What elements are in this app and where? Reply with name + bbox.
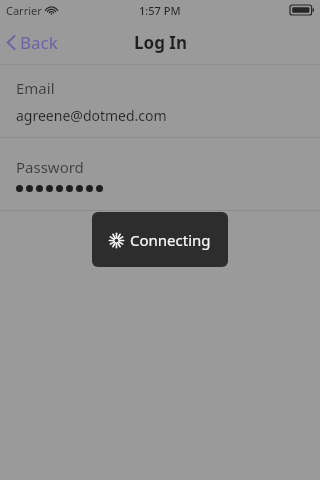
staticText: Log In	[134, 31, 187, 54]
button[interactable]: Email	[0, 65, 320, 137]
staticText: Password	[16, 157, 84, 177]
staticText: Back	[20, 31, 58, 54]
button[interactable]: Back	[6, 31, 58, 54]
staticText: 1:57 PM	[139, 3, 181, 18]
staticText: Carrier	[6, 3, 42, 18]
staticText: agreene@dotmed.com	[16, 106, 167, 125]
staticText: Log In	[135, 223, 186, 246]
other: Loading	[109, 233, 124, 248]
button[interactable]: Loading	[92, 212, 228, 267]
button[interactable]: Password	[0, 138, 320, 210]
staticText: Connecting	[130, 230, 211, 250]
button[interactable]: Log In	[0, 211, 320, 257]
staticText: Email	[16, 78, 55, 98]
